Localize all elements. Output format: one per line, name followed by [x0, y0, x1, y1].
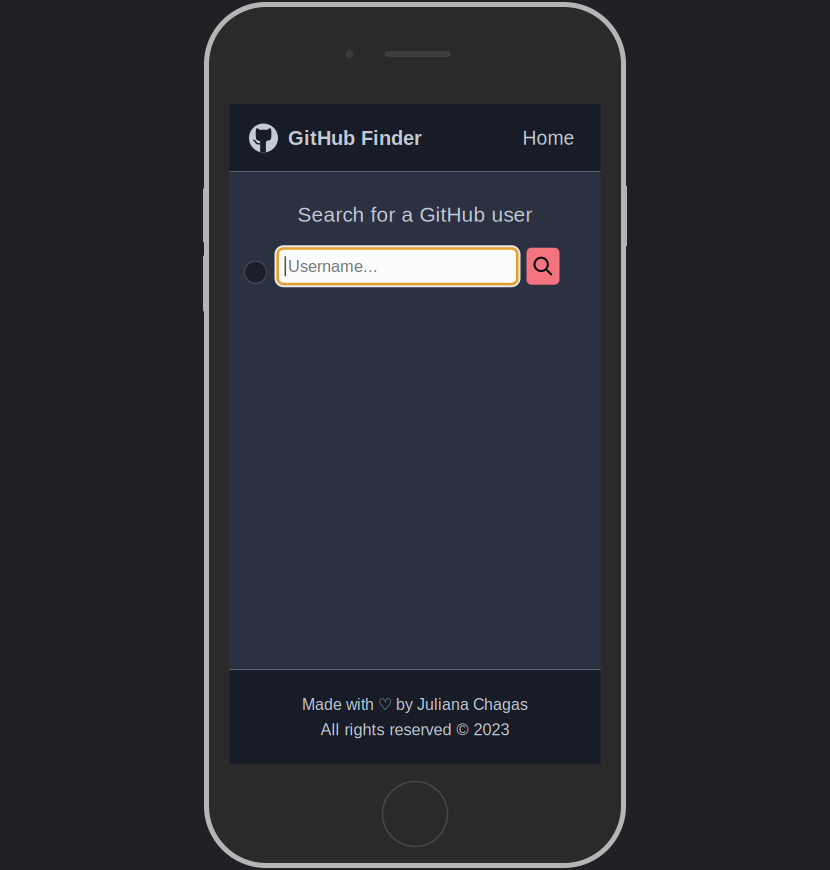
staticText: Home — [522, 127, 574, 149]
staticText: GitHub Finder — [288, 127, 422, 149]
staticText: All rights reserved © 2023 — [320, 721, 509, 739]
button[interactable]: Username... — [275, 246, 519, 286]
button[interactable]: Search — [526, 248, 559, 285]
staticText: Search for a GitHub user — [297, 203, 532, 226]
button[interactable]: GitHub Finder — [249, 117, 422, 158]
staticText: Made with ♡ by Juliana Chagas — [302, 695, 528, 714]
staticText: Username... — [288, 257, 378, 275]
button[interactable]: Home — [520, 120, 576, 156]
